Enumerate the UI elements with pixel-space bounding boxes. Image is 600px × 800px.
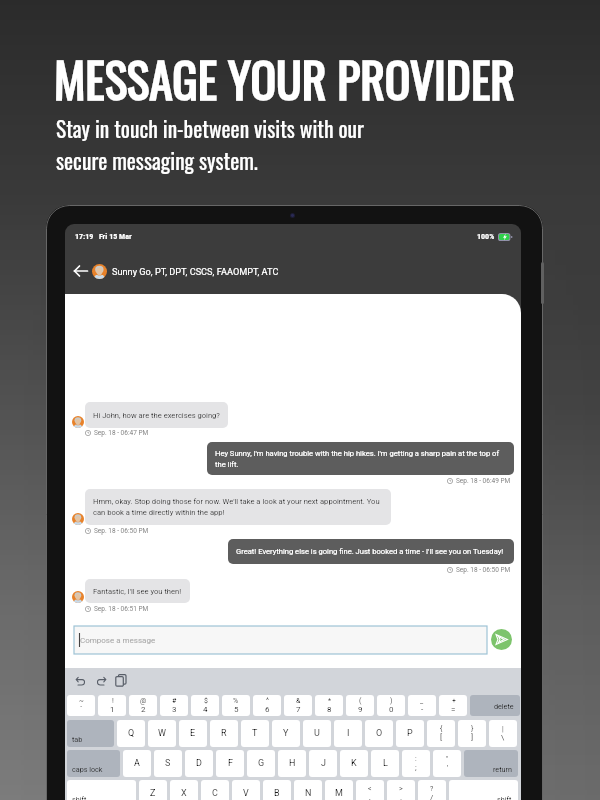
staticText: C bbox=[212, 788, 218, 799]
staticText: ? bbox=[430, 785, 434, 793]
staticText: 9 bbox=[358, 705, 363, 714]
button[interactable]: K bbox=[340, 750, 368, 777]
staticText: 0 bbox=[389, 705, 394, 714]
button[interactable]: $ bbox=[191, 695, 219, 716]
staticText: MESSAGE YOUR PROVIDER bbox=[54, 43, 515, 113]
button[interactable]: * bbox=[315, 695, 343, 716]
button[interactable]: shift bbox=[67, 780, 136, 800]
button[interactable]: V bbox=[232, 780, 260, 800]
staticText: * bbox=[328, 697, 332, 705]
button[interactable]: ( bbox=[346, 695, 374, 716]
button[interactable]: Paste bbox=[115, 674, 127, 687]
button[interactable]: tab bbox=[67, 720, 114, 747]
button[interactable]: R bbox=[210, 720, 238, 747]
button[interactable]: & bbox=[284, 695, 312, 716]
button[interactable]: W bbox=[148, 720, 176, 747]
staticText: = bbox=[451, 705, 456, 714]
button[interactable]: ) bbox=[377, 695, 405, 716]
button[interactable]: " bbox=[433, 750, 461, 777]
button[interactable]: shift bbox=[449, 780, 518, 800]
button[interactable]: Fantastic, I'll see you then! bbox=[85, 579, 190, 603]
staticText: Q bbox=[128, 728, 135, 739]
button[interactable]: } bbox=[458, 720, 486, 747]
button[interactable]: Undo bbox=[75, 676, 87, 686]
button[interactable]: F bbox=[216, 750, 244, 777]
staticText: 8 bbox=[327, 705, 332, 714]
button[interactable]: T bbox=[241, 720, 269, 747]
staticText: Hi John, how are the exercises going? bbox=[93, 411, 220, 420]
staticText: tab bbox=[72, 735, 83, 743]
staticText: Sep. 18 - 06:49 PM bbox=[456, 477, 511, 485]
staticText: - bbox=[421, 705, 424, 714]
staticText: Hmm, okay. Stop doing those for now. We'… bbox=[93, 497, 380, 517]
button[interactable]: ! bbox=[98, 695, 126, 716]
staticText: P bbox=[407, 728, 413, 739]
button[interactable]: Hey Sunny, I'm having trouble with the h… bbox=[207, 442, 514, 475]
button[interactable]: Q bbox=[117, 720, 145, 747]
button[interactable]: : bbox=[402, 750, 430, 777]
button[interactable]: Hi John, how are the exercises going? bbox=[85, 402, 228, 428]
staticText: K bbox=[351, 758, 357, 769]
button[interactable]: J bbox=[309, 750, 337, 777]
staticText: Sep. 18 - 06:47 PM bbox=[94, 429, 149, 437]
staticText: < bbox=[368, 785, 372, 793]
button[interactable]: caps lock bbox=[67, 750, 120, 777]
button[interactable]: < bbox=[356, 780, 384, 800]
button[interactable]: return bbox=[464, 750, 518, 777]
button[interactable]: Great! Everything else is going fine. Ju… bbox=[228, 539, 514, 564]
button[interactable]: Compose a message bbox=[74, 626, 487, 654]
staticText: M bbox=[335, 788, 343, 799]
button[interactable]: _ bbox=[408, 695, 436, 716]
staticText: > bbox=[399, 785, 403, 793]
button[interactable]: # bbox=[160, 695, 188, 716]
button[interactable]: M bbox=[325, 780, 353, 800]
button[interactable]: O bbox=[365, 720, 393, 747]
button[interactable]: Hmm, okay. Stop doing those for now. We'… bbox=[85, 489, 391, 525]
staticText: return bbox=[493, 765, 512, 773]
staticText: Sep. 18 - 06:50 PM bbox=[94, 527, 149, 535]
button[interactable]: D bbox=[185, 750, 213, 777]
staticText: T bbox=[252, 728, 258, 739]
staticText: Compose a message bbox=[80, 636, 156, 645]
button[interactable]: B bbox=[263, 780, 291, 800]
staticText: V bbox=[243, 788, 249, 799]
button[interactable]: Z bbox=[139, 780, 167, 800]
button[interactable]: U bbox=[303, 720, 331, 747]
staticText: 3 bbox=[172, 705, 177, 714]
button[interactable]: delete bbox=[470, 695, 520, 716]
button[interactable]: I bbox=[334, 720, 362, 747]
staticText: caps lock bbox=[72, 765, 103, 773]
button[interactable]: ? bbox=[418, 780, 446, 800]
staticText: . bbox=[400, 793, 403, 800]
button[interactable]: Back bbox=[73, 263, 89, 279]
button[interactable]: Redo bbox=[95, 676, 107, 686]
button[interactable]: L bbox=[371, 750, 399, 777]
button[interactable]: + bbox=[439, 695, 467, 716]
button[interactable]: > bbox=[387, 780, 415, 800]
button[interactable]: S bbox=[154, 750, 182, 777]
staticText: N bbox=[305, 788, 312, 799]
button[interactable]: { bbox=[427, 720, 455, 747]
button[interactable]: C bbox=[201, 780, 229, 800]
button[interactable]: H bbox=[278, 750, 306, 777]
staticText: ` bbox=[80, 705, 83, 714]
button[interactable]: ^ bbox=[253, 695, 281, 716]
button[interactable]: G bbox=[247, 750, 275, 777]
button[interactable]: Back bbox=[65, 248, 521, 294]
button[interactable]: % bbox=[222, 695, 250, 716]
button[interactable]: N bbox=[294, 780, 322, 800]
staticText: ' bbox=[447, 763, 449, 772]
staticText: Sunny Go, PT, DPT, CSCS, FAAOMPT, ATC bbox=[112, 266, 279, 277]
button[interactable]: E bbox=[179, 720, 207, 747]
staticText: & bbox=[296, 697, 301, 705]
button[interactable]: | bbox=[489, 720, 517, 747]
button[interactable]: Send message bbox=[491, 629, 512, 650]
staticText: , bbox=[369, 793, 371, 800]
button[interactable]: P bbox=[396, 720, 424, 747]
button[interactable]: Y bbox=[272, 720, 300, 747]
button[interactable]: X bbox=[170, 780, 198, 800]
button[interactable]: @ bbox=[129, 695, 157, 716]
staticText: ] bbox=[471, 733, 474, 742]
button[interactable]: A bbox=[123, 750, 151, 777]
button[interactable]: ~ bbox=[67, 695, 95, 716]
